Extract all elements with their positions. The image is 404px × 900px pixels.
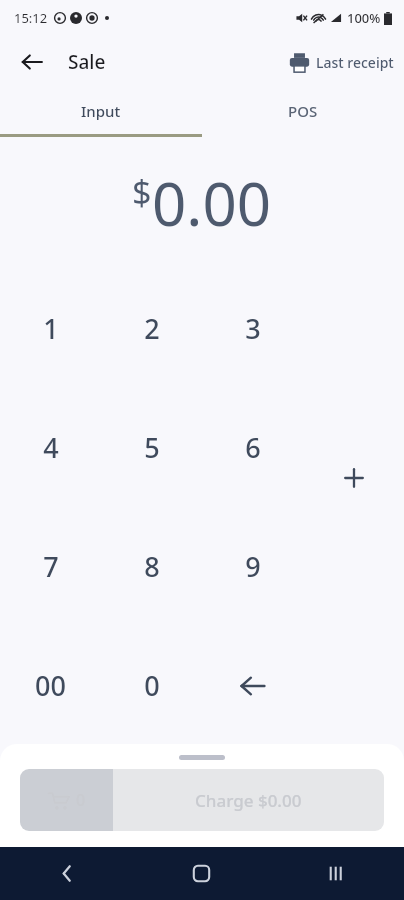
staticText: 5: [144, 429, 160, 466]
button[interactable]: Input: [0, 88, 202, 134]
staticText: 9: [245, 548, 261, 585]
button[interactable]: 1: [0, 269, 101, 388]
button[interactable]: 4: [0, 388, 101, 507]
button[interactable]: 2: [101, 269, 202, 388]
staticText: 4: [43, 429, 59, 466]
staticText: POS: [288, 101, 318, 121]
staticText: Sale: [68, 49, 106, 75]
button[interactable]: Home: [134, 847, 269, 900]
staticText: 100%: [347, 9, 381, 27]
button[interactable]: Recent apps: [269, 847, 404, 900]
button[interactable]: 8: [101, 507, 202, 626]
button[interactable]: Add: [303, 448, 404, 508]
staticText: Last receipt: [316, 53, 394, 72]
staticText: 0.00: [152, 162, 272, 244]
staticText: Charge $0.00: [195, 789, 302, 812]
staticText: 0: [144, 667, 160, 704]
staticText: 7: [43, 548, 59, 585]
button[interactable]: Charge $0.00: [113, 769, 384, 831]
button[interactable]: 6: [202, 388, 303, 507]
staticText: 2: [144, 310, 160, 347]
button[interactable]: 5: [101, 388, 202, 507]
button[interactable]: 3: [202, 269, 303, 388]
button[interactable]: POS: [202, 88, 404, 134]
button[interactable]: Back: [0, 847, 134, 900]
button[interactable]: 0: [101, 626, 202, 745]
staticText: 1: [43, 310, 59, 347]
staticText: 00: [35, 667, 66, 704]
button[interactable]: Backspace: [202, 626, 303, 745]
staticText: 3: [245, 310, 261, 347]
button[interactable]: Last receipt: [279, 46, 404, 79]
button[interactable]: 0: [20, 769, 113, 831]
staticText: 6: [245, 429, 261, 466]
button[interactable]: 00: [0, 626, 101, 745]
button[interactable]: 9: [202, 507, 303, 626]
staticText: $: [132, 169, 152, 215]
staticText: Input: [81, 101, 121, 121]
button[interactable]: 7: [0, 507, 101, 626]
button[interactable]: Back: [12, 42, 52, 82]
staticText: 8: [144, 548, 160, 585]
staticText: 15:12: [14, 9, 48, 27]
